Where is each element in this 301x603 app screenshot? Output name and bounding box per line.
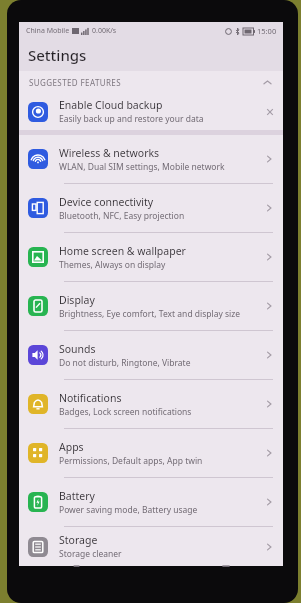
staticText: China Mobile [26,26,70,36]
button[interactable]: Battery [19,478,283,526]
staticText: Do not disturb, Ringtone, Vibrate [59,357,191,369]
staticText: 15:00 [257,26,277,36]
staticText: Home screen & wallpaper [59,244,186,258]
other: Dismiss [265,107,275,117]
button[interactable]: Wireless & networks [19,135,283,183]
staticText: Battery [59,489,95,503]
other: Collapse [262,77,273,88]
staticText: WLAN, Dual SIM settings, Mobile network [59,161,225,173]
staticText: Settings [28,45,87,65]
button[interactable]: Storage [19,527,283,566]
staticText: Device connectivity [59,195,154,209]
staticText: Bluetooth, NFC, Easy projection [59,210,185,222]
button[interactable]: Display [19,282,283,330]
button[interactable]: Sounds [19,331,283,379]
staticText: Notifications [59,391,122,405]
staticText: Wireless & networks [59,146,160,160]
staticText: 0.00K/s [92,26,117,36]
staticText: Themes, Always on display [59,259,166,271]
staticText: Easily back up and restore your data [59,113,204,125]
staticText: Sounds [59,342,96,356]
button[interactable]: Home screen & wallpaper [19,233,283,281]
button[interactable]: SUGGESTED FEATURES [19,71,283,93]
staticText: Apps [59,440,84,454]
button[interactable]: Device connectivity [19,184,283,232]
button[interactable]: Notifications [19,380,283,428]
staticText: Storage cleaner [59,548,122,560]
staticText: SUGGESTED FEATURES [29,77,122,88]
staticText: Permissions, Default apps, App twin [59,455,203,467]
staticText: Enable Cloud backup [59,98,163,112]
staticText: Display [59,293,95,307]
staticText: Brightness, Eye comfort, Text and displa… [59,308,241,320]
button[interactable]: Apps [19,429,283,477]
button[interactable]: Enable Cloud backup [19,93,283,130]
staticText: Storage [59,533,98,547]
staticText: Power saving mode, Battery usage [59,504,198,516]
staticText: Badges, Lock screen notifications [59,406,192,418]
